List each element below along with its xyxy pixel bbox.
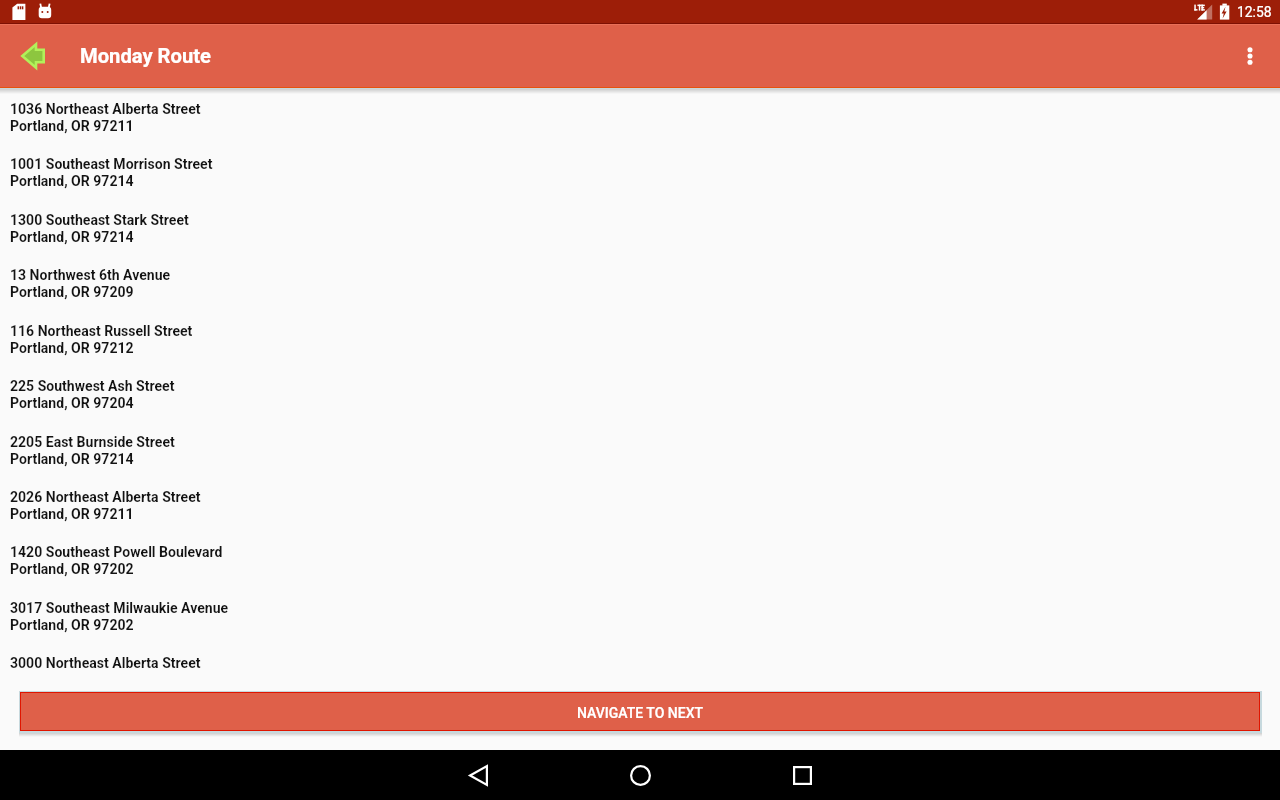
staticText: Portland, OR 97211 — [10, 506, 134, 523]
button[interactable]: 225 Southwest Ash Street — [0, 378, 1280, 433]
button[interactable]: NAVIGATE TO NEXT — [21, 693, 1259, 730]
staticText: 2205 East Burnside Street — [10, 434, 175, 451]
staticText: 1036 Northeast Alberta Street — [10, 101, 201, 118]
staticText: Monday Route — [80, 44, 211, 68]
staticText: 1300 Southeast Stark Street — [10, 212, 189, 229]
staticText: Portland, OR 97214 — [10, 229, 134, 246]
staticText: 225 Southwest Ash Street — [10, 378, 175, 395]
staticText: Portland, OR 97214 — [10, 173, 134, 190]
button[interactable]: 3017 Southeast Milwaukie Avenue — [0, 600, 1280, 655]
button[interactable]: 1001 Southeast Morrison Street — [0, 156, 1280, 211]
staticText: Portland, OR 97202 — [10, 617, 134, 634]
staticText: Portland, OR 97211 — [10, 118, 134, 135]
button[interactable]: 1036 Northeast Alberta Street — [0, 101, 1280, 156]
button[interactable]: Back — [398, 750, 558, 800]
staticText: Portland, OR 97204 — [10, 395, 134, 412]
staticText: 3017 Southeast Milwaukie Avenue — [10, 600, 229, 617]
button[interactable]: Home — [560, 750, 720, 800]
staticText: Portland, OR 97209 — [10, 284, 134, 301]
button[interactable]: Navigate up — [11, 34, 55, 78]
button[interactable]: 2205 East Burnside Street — [0, 434, 1280, 489]
staticText: 2026 Northeast Alberta Street — [10, 489, 201, 506]
button[interactable]: 2026 Northeast Alberta Street — [0, 489, 1280, 544]
button[interactable]: Recent apps — [722, 750, 882, 800]
button[interactable]: More options — [1230, 36, 1270, 76]
button[interactable]: 1420 Southeast Powell Boulevard — [0, 544, 1280, 599]
button[interactable]: 3000 Northeast Alberta Street — [0, 655, 1280, 710]
staticText: 1001 Southeast Morrison Street — [10, 156, 213, 173]
button[interactable]: 1300 Southeast Stark Street — [0, 212, 1280, 267]
staticText: 12:58 — [1237, 4, 1272, 20]
staticText: Portland, OR 97202 — [10, 561, 134, 578]
staticText: 13 Northwest 6th Avenue — [10, 267, 171, 284]
staticText: NAVIGATE TO NEXT — [577, 705, 704, 721]
staticText: Portland, OR 97212 — [10, 340, 134, 357]
button[interactable]: 13 Northwest 6th Avenue — [0, 267, 1280, 322]
staticText: Portland, OR 97214 — [10, 451, 134, 468]
staticText: 116 Northeast Russell Street — [10, 323, 193, 340]
button[interactable]: 116 Northeast Russell Street — [0, 323, 1280, 378]
staticText: 3000 Northeast Alberta Street — [10, 655, 201, 672]
staticText: 1420 Southeast Powell Boulevard — [10, 544, 223, 561]
